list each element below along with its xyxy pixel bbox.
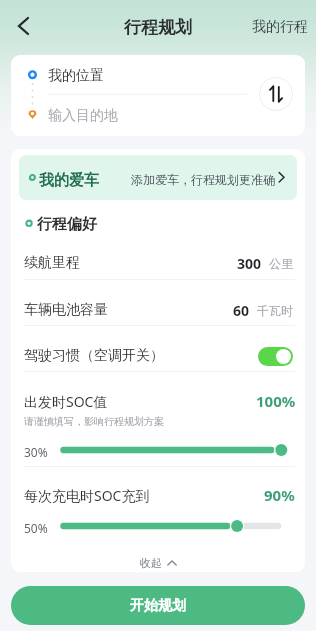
staticText: 我的行程 bbox=[252, 18, 308, 36]
button[interactable]: 我的行程 bbox=[252, 18, 308, 36]
staticText: 30% bbox=[24, 444, 48, 460]
staticText: 行程偏好 bbox=[37, 215, 97, 234]
staticText: 每次充电时SOC充到 bbox=[24, 486, 150, 505]
staticText: 开始规划 bbox=[130, 597, 186, 615]
button[interactable]: 车辆电池容量 bbox=[11, 288, 305, 332]
staticText: 千瓦时 bbox=[257, 303, 293, 318]
button[interactable]: 我的爱车 bbox=[19, 155, 297, 200]
button[interactable]: 续航里程 bbox=[11, 241, 305, 285]
staticText: 驾驶习惯（空调开关） bbox=[24, 347, 164, 365]
staticText: 50% bbox=[24, 520, 48, 536]
staticText: 添加爱车，行程规划更准确 bbox=[131, 172, 275, 187]
staticText: 行程规划 bbox=[124, 17, 192, 38]
staticText: 收起 bbox=[140, 556, 162, 570]
staticText: 续航里程 bbox=[24, 254, 80, 272]
button[interactable]: 收起 bbox=[11, 549, 305, 572]
staticText: 出发时SOC值 bbox=[24, 392, 108, 411]
button[interactable]: Back bbox=[6, 9, 40, 43]
staticText: 我的位置 bbox=[48, 67, 104, 85]
staticText: 90% bbox=[264, 485, 295, 505]
staticText: 公里 bbox=[269, 256, 293, 271]
staticText: 车辆电池容量 bbox=[24, 301, 108, 319]
staticText: 60 bbox=[233, 301, 250, 320]
staticText: 100% bbox=[256, 391, 296, 411]
button[interactable]: 开始规划 bbox=[11, 586, 305, 625]
staticText: 请谨慎填写，影响行程规划方案 bbox=[24, 415, 164, 428]
staticText: 300 bbox=[237, 254, 262, 273]
button[interactable]: Swap origin and destination bbox=[259, 77, 293, 111]
staticText: 我的爱车 bbox=[39, 171, 99, 190]
staticText: 输入目的地 bbox=[48, 107, 118, 125]
button[interactable]: Air conditioning toggle bbox=[258, 347, 293, 366]
